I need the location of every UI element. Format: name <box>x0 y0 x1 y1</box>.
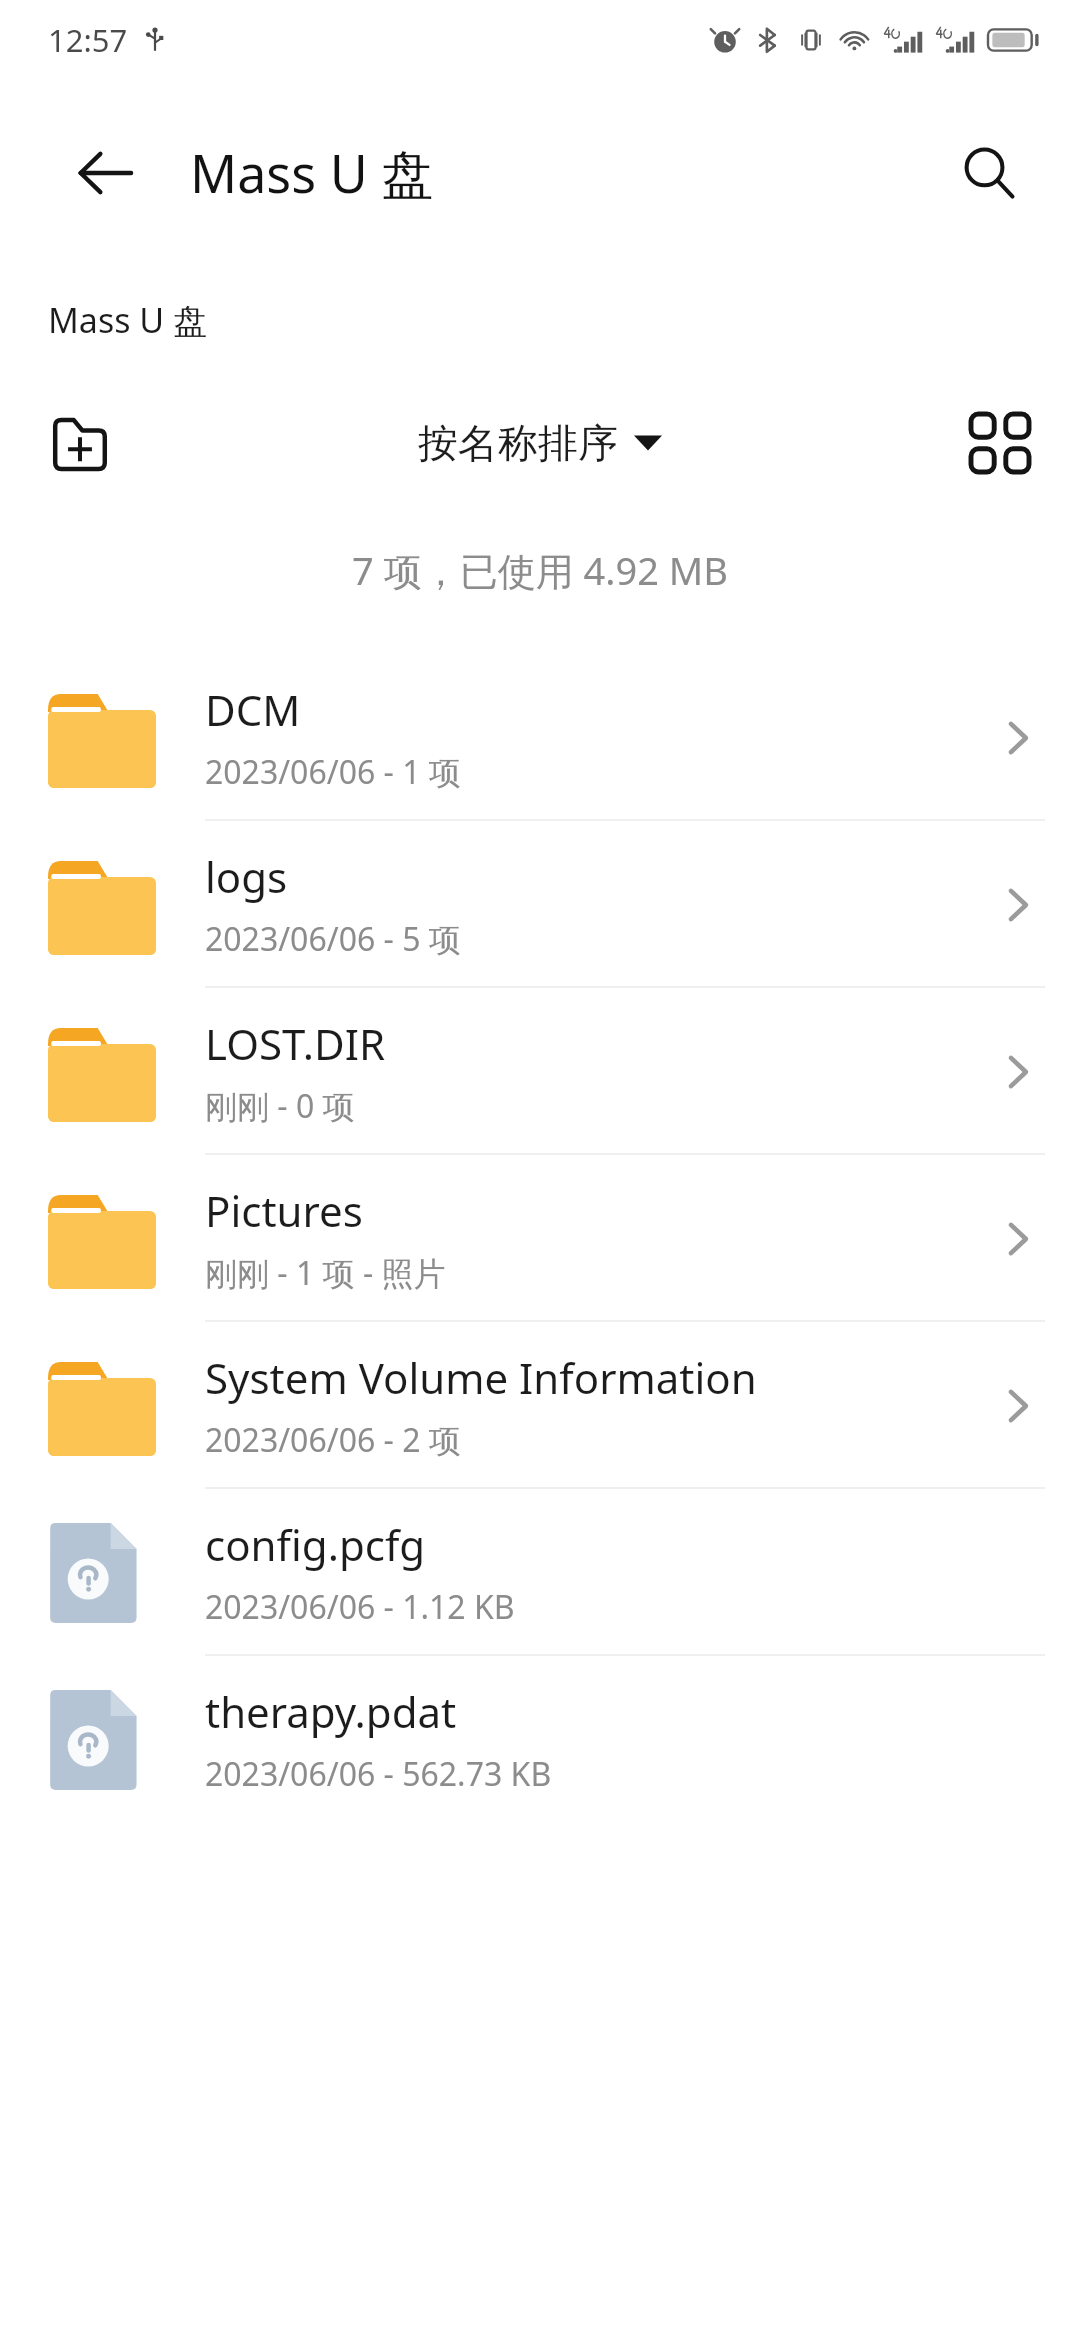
staticText: 2023/06/06 - 2 项 <box>205 1418 461 1462</box>
button[interactable]: therapy.pdat <box>0 1656 1080 1823</box>
staticText: LOST.DIR <box>205 1015 386 1072</box>
staticText: 2023/06/06 - 562.73 KB <box>205 1752 552 1796</box>
staticText: Mass U 盘 <box>190 137 434 208</box>
staticText: 按名称排序 <box>418 418 618 468</box>
button[interactable]: Pictures <box>0 1155 1080 1322</box>
button[interactable]: New folder <box>36 399 124 487</box>
button[interactable]: 按名称排序 <box>418 418 662 468</box>
staticText: config.pcfg <box>205 1516 426 1573</box>
staticText: Pictures <box>205 1182 363 1239</box>
button[interactable]: config.pcfg <box>0 1489 1080 1656</box>
button[interactable]: LOST.DIR <box>0 988 1080 1155</box>
staticText: 2023/06/06 - 5 项 <box>205 917 461 961</box>
button[interactable]: System Volume Information <box>0 1322 1080 1489</box>
staticText: System Volume Information <box>205 1349 757 1406</box>
staticText: logs <box>205 848 288 905</box>
staticText: 刚刚 - 0 项 <box>205 1084 355 1128</box>
button[interactable]: DCM <box>0 654 1080 821</box>
button[interactable]: Back <box>62 130 148 216</box>
button[interactable]: Mass U 盘 <box>48 297 208 343</box>
button[interactable]: logs <box>0 821 1080 988</box>
staticText: 7 项，已使用 4.92 MB <box>352 544 728 596</box>
button[interactable]: Search <box>946 130 1032 216</box>
staticText: therapy.pdat <box>205 1683 457 1740</box>
staticText: 2023/06/06 - 1 项 <box>205 750 461 794</box>
staticText: 12:57 <box>48 19 128 61</box>
staticText: 刚刚 - 1 项 - 照片 <box>205 1251 446 1295</box>
staticText: DCM <box>205 681 301 738</box>
staticText: 2023/06/06 - 1.12 KB <box>205 1585 515 1629</box>
button[interactable]: Grid view <box>956 399 1044 487</box>
